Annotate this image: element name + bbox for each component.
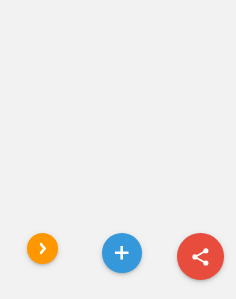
- button[interactable]: Next: [27, 233, 58, 264]
- button[interactable]: Share: [177, 233, 224, 280]
- button[interactable]: Add: [102, 233, 142, 273]
